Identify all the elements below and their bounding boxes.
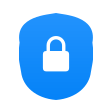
button[interactable]: Security — [19, 13, 93, 100]
